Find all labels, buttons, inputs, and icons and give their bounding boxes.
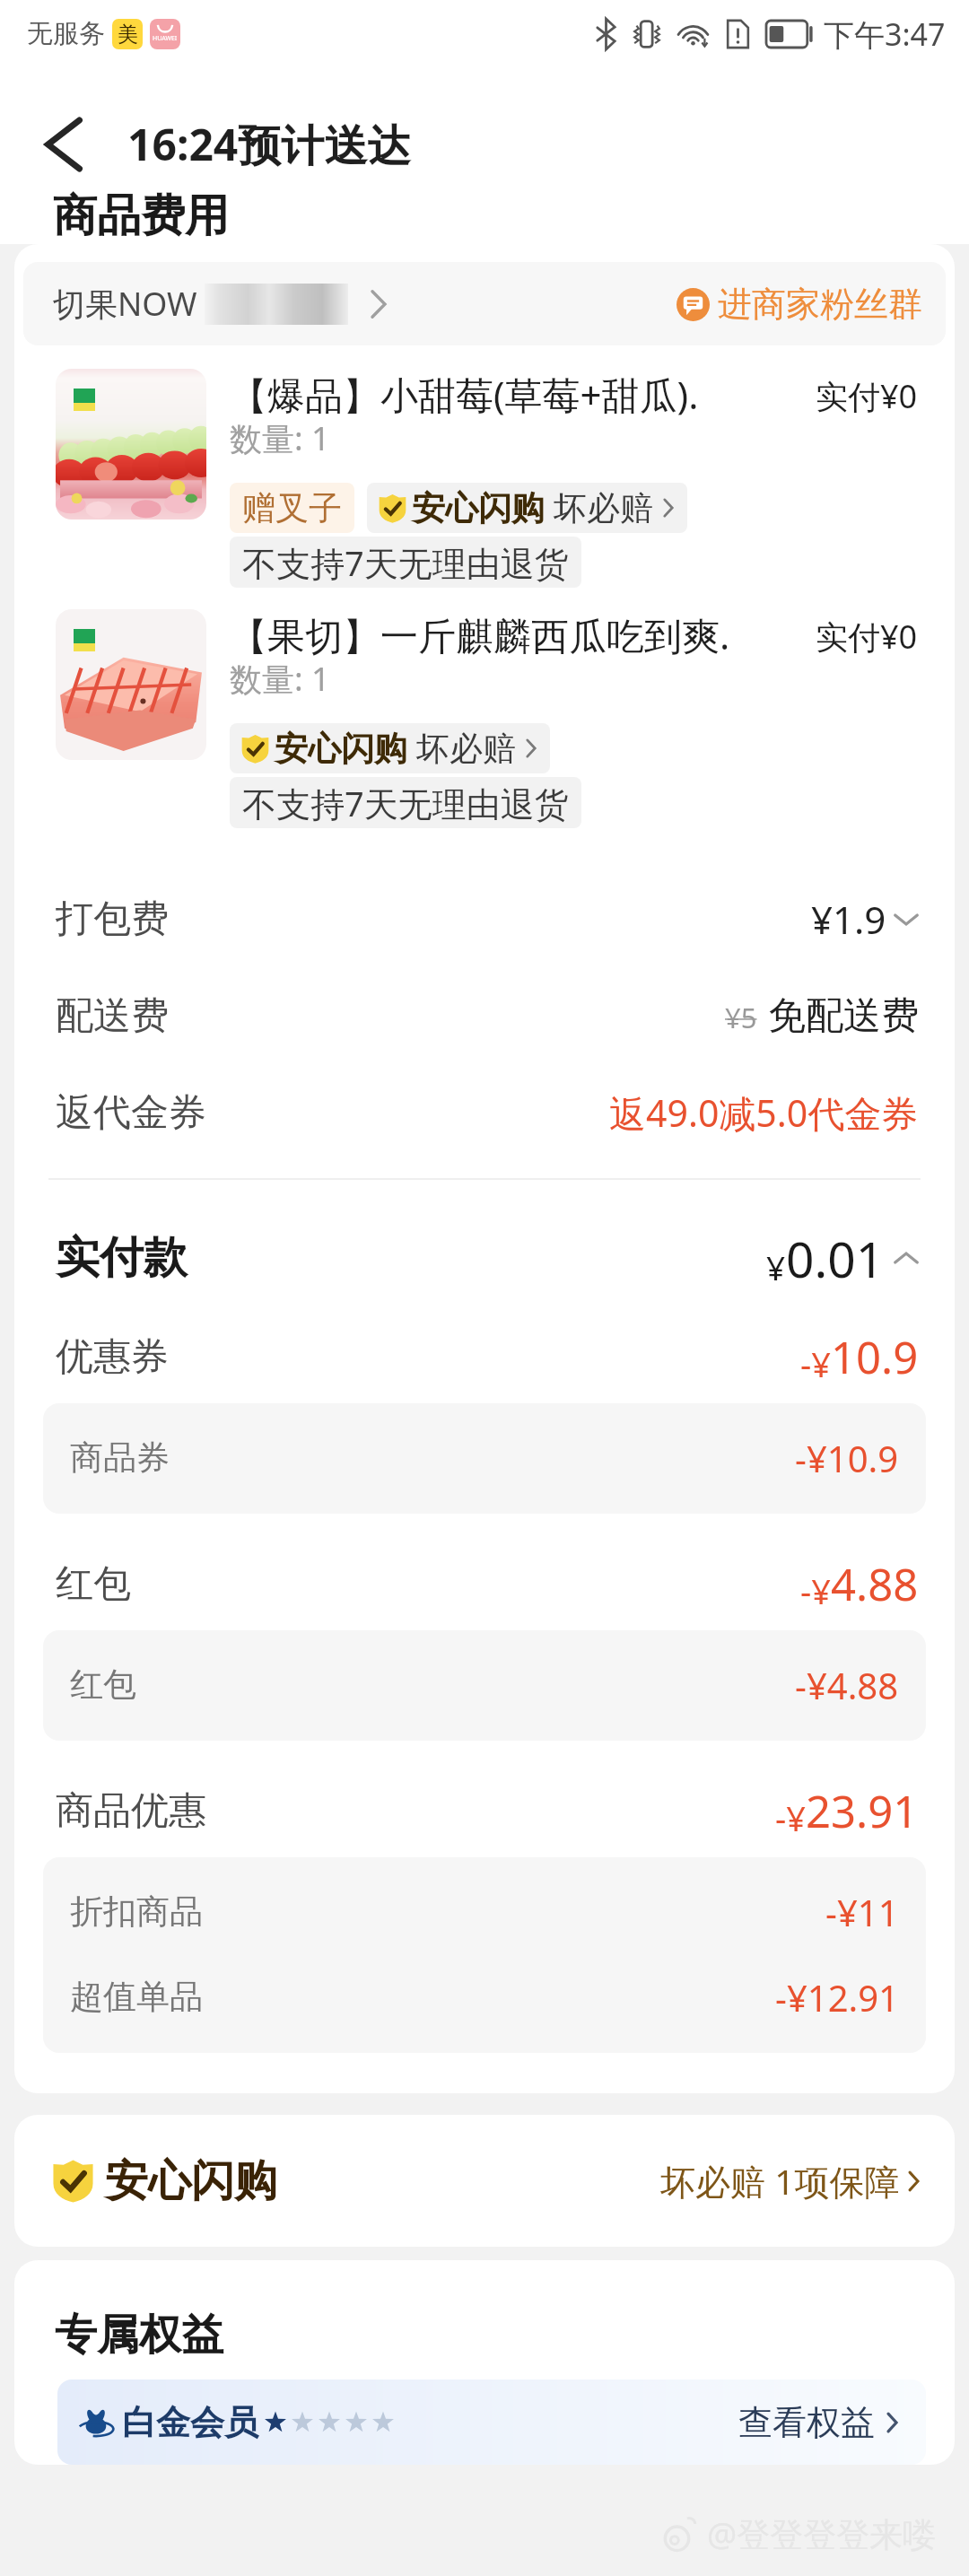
staticText: 实付¥0 — [816, 374, 918, 418]
staticText: 安心闪购 — [105, 2154, 277, 2208]
staticText: 无服务 — [27, 17, 105, 50]
staticText: 数量: 1 — [230, 657, 330, 701]
staticText: 23.91 — [806, 1781, 919, 1841]
staticText: -¥ — [800, 1340, 831, 1387]
staticText: 超值单品 — [70, 1976, 203, 2018]
staticText: 下午3:47 — [824, 13, 946, 55]
staticText: 坏必赔 1项保障 — [660, 2157, 900, 2205]
staticText: 白金会员 — [122, 2401, 258, 2444]
staticText: 4.88 — [831, 1554, 919, 1614]
staticText: -¥ — [775, 1794, 806, 1841]
staticText: -¥12.91 — [775, 1973, 899, 2022]
button[interactable]: 安心闪购 — [230, 723, 550, 773]
staticText: 进商家粉丝群 — [718, 283, 922, 326]
staticText: 查看权益 — [738, 2401, 875, 2444]
staticText: 【爆品】小甜莓(草莓+甜瓜). — [230, 369, 699, 420]
staticText: 坏必赔 — [416, 728, 516, 770]
button[interactable]: 安心闪购 — [367, 483, 687, 533]
button[interactable]: 白金会员 — [57, 2380, 926, 2465]
staticText: 实付¥0 — [816, 615, 918, 659]
staticText: @登登登登来喽 — [707, 2511, 937, 2556]
staticText: 切果NOW — [53, 282, 197, 326]
staticText: 商品券 — [70, 1436, 170, 1479]
staticText: 折扣商品 — [70, 1891, 203, 1933]
staticText: 坏必赔 — [554, 487, 653, 529]
staticText: ¥5 — [725, 999, 757, 1036]
staticText: 安心闪购 — [412, 487, 545, 529]
staticText: 【果切】一斤麒麟西瓜吃到爽. — [230, 609, 730, 660]
staticText: 商品费用 — [53, 188, 229, 244]
staticText: -¥ — [800, 1567, 831, 1614]
staticText: 实付款 — [56, 1230, 188, 1286]
staticText: 美 — [118, 22, 138, 48]
button[interactable]: 安心闪购 — [14, 2115, 955, 2247]
staticText: 免配送费 — [768, 992, 919, 1040]
staticText: 打包费 — [56, 895, 169, 943]
staticText: 10.9 — [831, 1327, 919, 1387]
staticText: 配送费 — [56, 992, 169, 1040]
button[interactable]: Back — [0, 101, 127, 188]
staticText: ¥ — [766, 1244, 786, 1289]
staticText: -¥11 — [825, 1888, 899, 1936]
staticText: 不支持7天无理由退货 — [242, 780, 569, 826]
staticText: 不支持7天无理由退货 — [242, 539, 569, 586]
staticText: -¥10.9 — [795, 1434, 899, 1482]
staticText: 红包 — [70, 1663, 136, 1706]
staticText: 16:24预计送达 — [127, 115, 411, 174]
staticText: 专属权益 — [55, 2309, 223, 2362]
button[interactable]: 切果NOW — [23, 262, 946, 345]
staticText: HUAWEI — [153, 34, 178, 43]
staticText: 安心闪购 — [275, 728, 407, 770]
staticText: -¥4.88 — [795, 1661, 899, 1709]
staticText: 优惠券 — [56, 1333, 169, 1381]
staticText: 返49.0减5.0代金券 — [609, 1087, 919, 1138]
staticText: 红包 — [56, 1560, 131, 1608]
staticText: 返代金券 — [56, 1089, 206, 1137]
staticText: 商品优惠 — [56, 1787, 206, 1835]
staticText: ¥1.9 — [811, 894, 886, 945]
staticText: 0.01 — [786, 1225, 885, 1292]
staticText: 赠叉子 — [242, 487, 342, 529]
button[interactable]: 进商家粉丝群 — [677, 283, 922, 326]
staticText: 数量: 1 — [230, 416, 330, 460]
